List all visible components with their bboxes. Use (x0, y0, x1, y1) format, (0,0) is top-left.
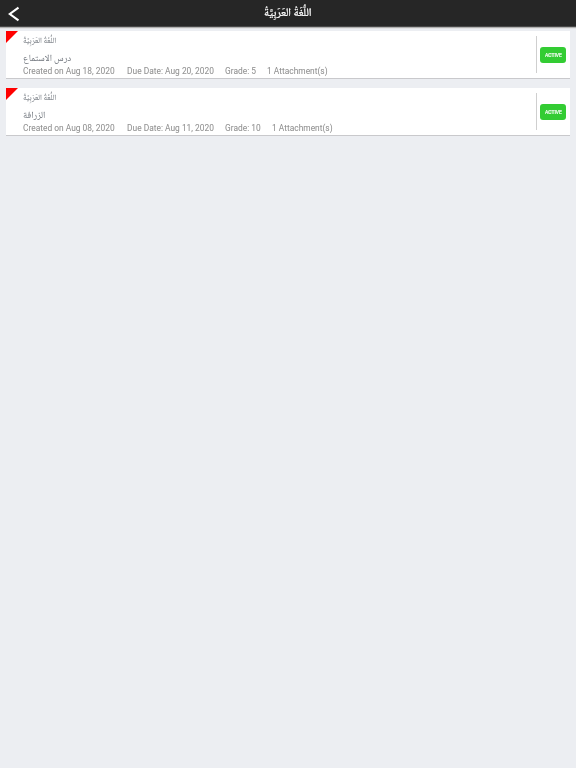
staticText: ACTIVE (545, 52, 562, 58)
staticText: الزرافة (23, 108, 46, 124)
staticText: درس الاستماع (23, 51, 72, 67)
staticText: Due Date: Aug 20, 2020 (127, 66, 214, 76)
button[interactable]: اللُّغَةُ العَرَبِيَّةُ (6, 88, 570, 135)
staticText: 1 Attachment(s) (267, 66, 328, 76)
staticText: اللُّغَةُ العَرَبِيَّةُ (264, 4, 312, 24)
staticText: Grade: 10 (225, 123, 261, 133)
staticText: Created on Aug 08, 2020 (23, 123, 115, 133)
button[interactable]: ACTIVE (540, 47, 566, 63)
staticText: اللُّغَةُ العَرَبِيَّةُ (23, 34, 57, 48)
button[interactable]: ACTIVE (540, 104, 566, 120)
button[interactable]: Back (0, 0, 27, 26)
button[interactable]: اللُّغَةُ العَرَبِيَّةُ (6, 31, 570, 78)
staticText: ACTIVE (545, 109, 562, 115)
staticText: Grade: 5 (225, 66, 256, 76)
staticText: اللُّغَةُ العَرَبِيَّةُ (23, 91, 57, 105)
staticText: Due Date: Aug 11, 2020 (127, 123, 214, 133)
staticText: Created on Aug 18, 2020 (23, 66, 115, 76)
staticText: 1 Attachment(s) (272, 123, 333, 133)
